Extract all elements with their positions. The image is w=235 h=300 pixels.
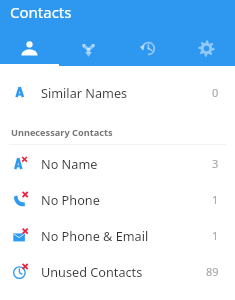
button[interactable]: No Phone & Email [0, 217, 235, 253]
staticText: No Phone & Email [41, 227, 212, 244]
staticText: 0 [212, 85, 219, 100]
button[interactable]: History tab [118, 28, 177, 66]
staticText: Contacts [10, 2, 72, 22]
button[interactable]: No Phone [0, 181, 235, 217]
staticText: 1 [212, 228, 219, 243]
staticText: Unused Contacts [41, 263, 206, 280]
button[interactable]: Merge duplicates tab [59, 28, 118, 66]
staticText: No Name [41, 155, 212, 172]
staticText: No Phone [41, 191, 212, 208]
button[interactable]: Contacts tab [0, 28, 59, 66]
button[interactable]: Similar Names [0, 74, 235, 110]
staticText: Similar Names [41, 84, 212, 101]
staticText: 3 [212, 156, 219, 171]
staticText: 1 [212, 192, 219, 207]
button[interactable]: No Name [0, 145, 235, 181]
button[interactable]: Unused Contacts [0, 253, 235, 289]
staticText: Unnecessary Contacts [11, 126, 113, 139]
staticText: 89 [206, 264, 219, 279]
button[interactable]: Settings tab [177, 28, 235, 66]
